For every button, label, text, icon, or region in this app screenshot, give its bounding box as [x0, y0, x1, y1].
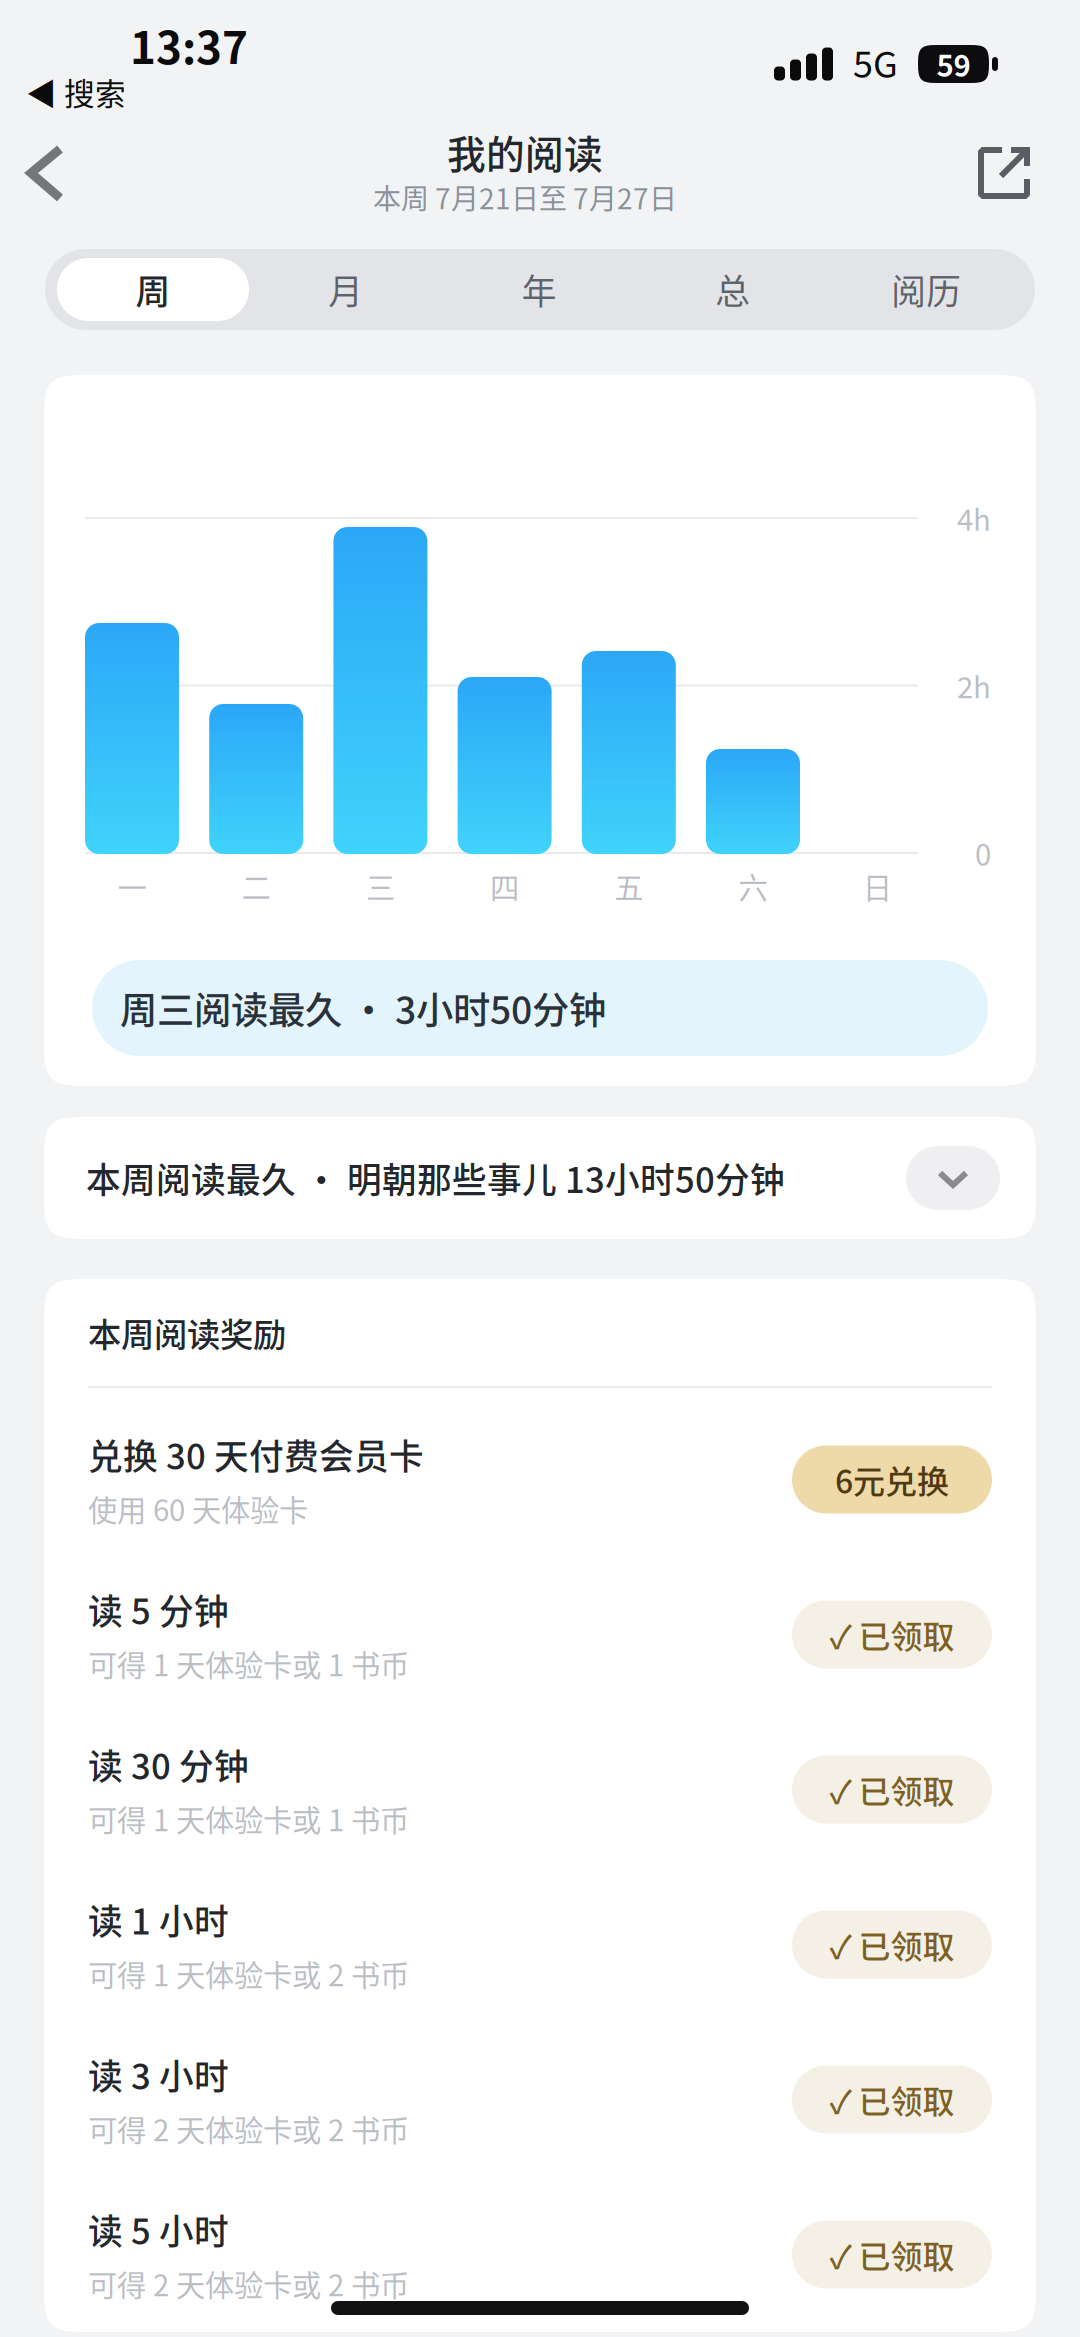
staticText: 读 1 小时: [88, 1894, 229, 1945]
staticText: 阅历: [891, 264, 961, 315]
staticText: 四: [490, 865, 519, 907]
button[interactable]: 周: [57, 258, 249, 321]
button[interactable]: ◀ 搜索: [26, 71, 126, 113]
staticText: 13:37: [130, 13, 248, 77]
staticText: 5G: [853, 36, 898, 88]
staticText: 本周阅读最久 · 明朝那些事儿 13小时50分钟: [86, 1153, 785, 1203]
staticText: 兑换 30 天付费会员卡: [88, 1429, 424, 1480]
staticText: 一: [117, 865, 146, 907]
staticText: 可得 1 天体验卡或 1 书币: [88, 1797, 409, 1840]
staticText: ✓ 已领取: [829, 1921, 954, 1968]
button[interactable]: ✓ 已领取: [792, 2220, 992, 2288]
staticText: 周: [135, 264, 170, 315]
staticText: 可得 1 天体验卡或 2 书币: [88, 1952, 409, 1995]
button[interactable]: 返回: [0, 123, 96, 219]
staticText: 0: [975, 832, 991, 874]
staticText: 总: [715, 264, 750, 315]
button[interactable]: 6元兑换: [792, 1445, 992, 1513]
staticText: 4h: [957, 497, 991, 539]
staticText: 可得 2 天体验卡或 2 书币: [88, 2107, 409, 2150]
button[interactable]: 年: [442, 258, 636, 321]
staticText: 月: [328, 264, 363, 315]
staticText: 2h: [957, 664, 991, 707]
button[interactable]: 总: [636, 258, 829, 321]
staticText: 可得 1 天体验卡或 1 书币: [88, 1642, 409, 1685]
button[interactable]: 分享: [954, 123, 1050, 219]
staticText: 读 30 分钟: [88, 1739, 249, 1790]
staticText: ✓ 已领取: [829, 1766, 954, 1813]
staticText: ✓ 已领取: [829, 1611, 954, 1658]
staticText: 使用 60 天体验卡: [88, 1487, 308, 1530]
staticText: 本周 7月21日至 7月27日: [373, 177, 677, 217]
button[interactable]: 月: [249, 258, 442, 321]
staticText: 三: [366, 865, 395, 907]
staticText: 我的阅读: [447, 124, 603, 180]
staticText: 日: [863, 865, 892, 907]
staticText: 年: [522, 264, 557, 315]
staticText: 周三阅读最久 · 3小时50分钟: [120, 981, 606, 1035]
button[interactable]: ✓ 已领取: [792, 1600, 992, 1668]
button[interactable]: 阅历: [829, 258, 1023, 321]
staticText: 读 5 小时: [88, 2204, 229, 2255]
staticText: 读 5 分钟: [88, 1584, 229, 1635]
staticText: 六: [738, 865, 767, 907]
staticText: 59: [936, 43, 970, 85]
staticText: ◀ 搜索: [26, 70, 126, 114]
button[interactable]: ✓ 已领取: [792, 1755, 992, 1823]
staticText: 可得 2 天体验卡或 2 书币: [88, 2262, 409, 2305]
staticText: 读 3 小时: [88, 2049, 229, 2100]
staticText: 本周阅读奖励: [88, 1308, 286, 1357]
staticText: 6元兑换: [835, 1456, 949, 1503]
button[interactable]: ✓ 已领取: [792, 1910, 992, 1978]
staticText: ✓ 已领取: [829, 2076, 954, 2123]
button[interactable]: 展开: [906, 1146, 1000, 1210]
button[interactable]: ✓ 已领取: [792, 2065, 992, 2133]
staticText: 二: [242, 865, 271, 907]
staticText: 五: [614, 865, 643, 907]
staticText: ✓ 已领取: [829, 2231, 954, 2278]
